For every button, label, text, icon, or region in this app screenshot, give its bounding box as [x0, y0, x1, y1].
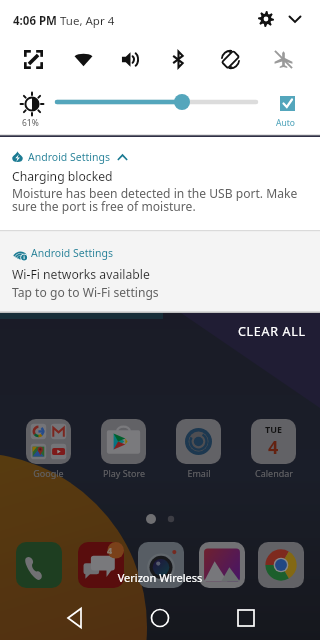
button[interactable]: Edit [16, 42, 50, 76]
staticText: Tap to go to Wi-Fi settings [12, 284, 159, 300]
staticText: Moisture has been detected in the USB po… [12, 185, 298, 215]
staticText: Email [187, 467, 211, 479]
button[interactable]: Android Settings [0, 233, 320, 311]
button[interactable]: Chrome [258, 542, 304, 588]
staticText: Android Settings [31, 246, 113, 260]
staticText: Charging blocked [12, 168, 113, 185]
staticText: Google [33, 467, 64, 479]
button[interactable]: Brightness [21, 93, 43, 115]
button[interactable]: Airplane mode [266, 42, 300, 76]
staticText: 4 [268, 435, 279, 460]
button[interactable]: Back [58, 600, 94, 636]
staticText: Verizon Wireless [0, 570, 320, 585]
button[interactable]: Messages [78, 542, 124, 588]
staticText: Tue, Apr 4 [57, 13, 115, 29]
button[interactable]: Collapse [283, 7, 307, 31]
staticText: CLEAR ALL [238, 323, 306, 340]
button[interactable]: Play Store [93, 419, 154, 479]
button[interactable]: Home [142, 600, 178, 636]
button[interactable]: Settings [254, 7, 278, 31]
button[interactable]: Bluetooth [161, 42, 195, 76]
staticText: 4:06 PM [13, 13, 57, 29]
button[interactable]: Sound [113, 42, 147, 76]
button[interactable]: Gallery [199, 542, 245, 588]
button[interactable]: TUE [243, 419, 304, 479]
staticText: Auto [276, 117, 295, 129]
button[interactable]: Recents [228, 600, 264, 636]
button[interactable]: Auto-rotate [213, 42, 247, 76]
button[interactable]: Camera [138, 542, 184, 588]
staticText: 4 [107, 544, 113, 556]
button[interactable]: Android Settings [0, 137, 320, 230]
button[interactable]: Wi-Fi [66, 42, 100, 76]
staticText: 61% [22, 117, 39, 129]
button[interactable]: Email [168, 419, 229, 479]
staticText: Android Settings [28, 150, 110, 164]
button[interactable]: Phone [16, 542, 62, 588]
button[interactable]: CLEAR ALL [0, 313, 320, 349]
staticText: Wi-Fi networks available [12, 266, 150, 283]
staticText: Calendar [255, 467, 293, 479]
button[interactable]: Google [18, 419, 79, 479]
staticText: TUE [265, 423, 283, 435]
staticText: Play Store [103, 467, 145, 479]
